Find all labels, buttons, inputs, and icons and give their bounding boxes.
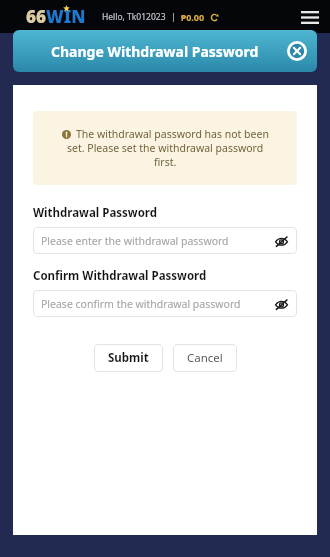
button[interactable]: Please confirm the withdrawal password [33,290,297,317]
staticText: | [171,11,176,23]
button[interactable]: Menu [298,5,322,29]
button[interactable]: Show password [273,296,289,312]
staticText: ₱0.00 [181,11,205,23]
staticText: Hello, Tk012023 [102,11,166,23]
staticText: Confirm Withdrawal Password [33,268,207,284]
button[interactable]: Show password [273,233,289,249]
button[interactable]: Close [287,41,307,61]
staticText: Please enter the withdrawal password [41,234,229,248]
staticText: The withdrawal password has not been [76,127,269,141]
staticText: set. Please set the withdrawal password [67,141,264,155]
staticText: 66 [26,5,46,28]
staticText: Change Withdrawal Password [51,42,259,61]
button[interactable]: Please enter the withdrawal password [33,227,297,254]
button[interactable]: Refresh balance [208,11,220,23]
button[interactable]: Submit [94,344,163,372]
staticText: Withdrawal Password [33,205,158,221]
staticText: Cancel [187,350,223,366]
staticText: Please confirm the withdrawal password [41,297,241,311]
staticText: WIN [46,5,86,28]
staticText: first. [154,155,177,169]
button[interactable]: Cancel [173,344,237,372]
staticText: Submit [108,350,149,366]
